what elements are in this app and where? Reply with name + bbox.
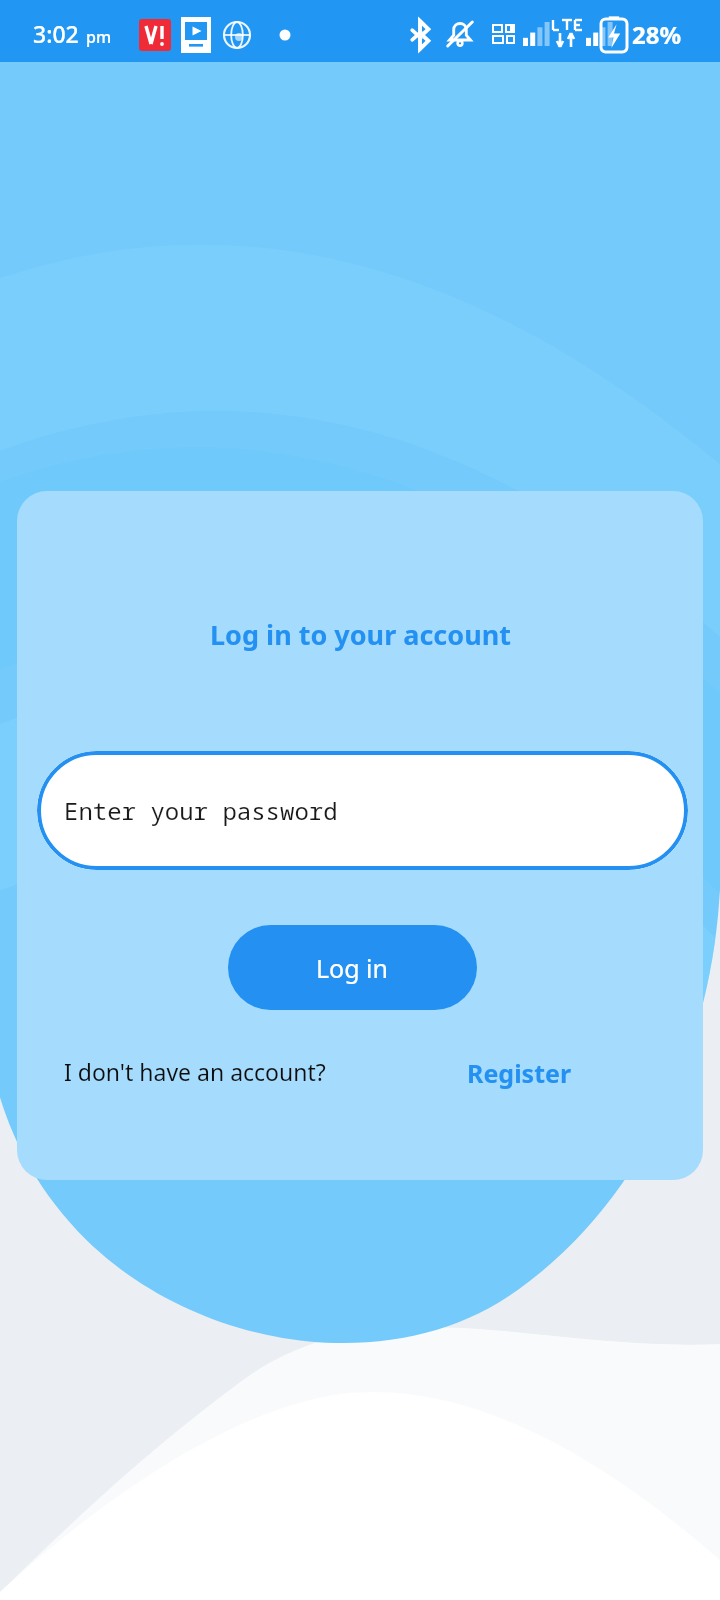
staticText: 28%	[632, 18, 682, 51]
button[interactable]: Register	[461, 1049, 566, 1083]
staticText: Register	[467, 1056, 572, 1090]
staticText: I don't have an account?	[64, 1056, 326, 1087]
staticText: Log in	[316, 951, 389, 985]
button[interactable]: Password field	[37, 751, 688, 870]
button[interactable]: Log in	[228, 925, 477, 1010]
staticText: Enter your password	[64, 794, 338, 827]
staticText: Log in to your account	[210, 616, 511, 653]
staticText: 3:02	[33, 18, 79, 49]
staticText: pm	[86, 26, 112, 48]
